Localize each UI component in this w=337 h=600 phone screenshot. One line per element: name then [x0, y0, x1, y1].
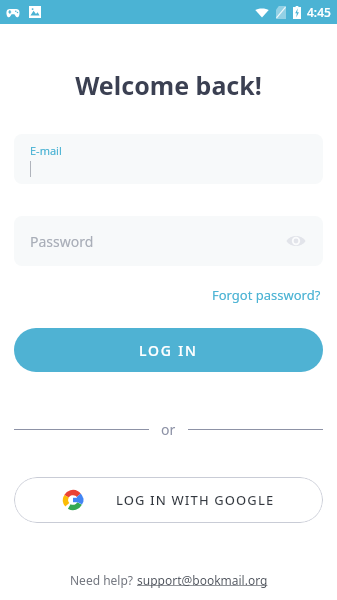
staticText: or [161, 420, 176, 439]
button[interactable]: Forgot password? [210, 284, 323, 306]
staticText: Welcome back! [0, 68, 337, 102]
button[interactable]: support@bookmail.org [137, 572, 268, 588]
button[interactable]: Show password [279, 224, 313, 258]
button[interactable]: E-mail [14, 134, 323, 184]
staticText: Forgot password? [212, 286, 321, 304]
staticText: E-mail [30, 143, 62, 158]
staticText: LOG IN WITH GOOGLE [116, 491, 275, 509]
staticText: LOG IN [139, 341, 198, 360]
button[interactable]: LOG IN [14, 328, 323, 372]
button[interactable]: Password [14, 216, 323, 266]
staticText: 4:45 [307, 4, 331, 20]
staticText: Password [30, 232, 94, 251]
staticText: Need help? [70, 572, 137, 588]
button[interactable]: LOG IN WITH GOOGLE [14, 477, 323, 523]
staticText: support@bookmail.org [137, 572, 268, 588]
